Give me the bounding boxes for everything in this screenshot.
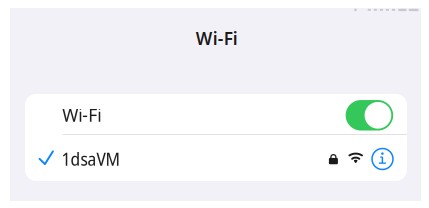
staticText: Wi-Fi	[196, 27, 238, 50]
staticText: 1dsaVM	[61, 147, 119, 171]
button[interactable]: 1dsaVM	[25, 134, 407, 181]
button[interactable]: Wi-Fi	[25, 94, 407, 134]
staticText: Wi-Fi	[62, 103, 101, 126]
